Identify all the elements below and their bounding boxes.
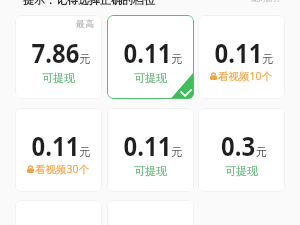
staticText: 0.11 bbox=[124, 35, 171, 70]
staticText: 规则说明 bbox=[251, 0, 279, 3]
staticText: 可提现 bbox=[134, 71, 167, 85]
staticText: 提示：记得选择正确的档位 bbox=[23, 0, 155, 7]
staticText: 0.11 bbox=[124, 128, 171, 163]
button[interactable]: 0.3 bbox=[198, 108, 285, 192]
button[interactable]: 最高 bbox=[15, 15, 102, 99]
staticText: 元 bbox=[262, 51, 273, 66]
staticText: 7.86 bbox=[32, 35, 79, 70]
button[interactable]: 0.11 bbox=[107, 108, 194, 192]
staticText: 元 bbox=[79, 51, 90, 66]
staticText: 可提现 bbox=[134, 164, 167, 178]
button[interactable]: 0.11 bbox=[15, 108, 102, 192]
staticText: 元 bbox=[171, 144, 182, 159]
staticText: 最高 bbox=[76, 18, 94, 29]
button[interactable]: 0.11 bbox=[107, 200, 194, 225]
button[interactable]: 0.11 bbox=[198, 15, 285, 99]
staticText: 看视频10个 bbox=[218, 69, 273, 83]
staticText: 元 bbox=[79, 144, 90, 159]
staticText: 0.11 bbox=[215, 35, 262, 70]
staticText: 可提现 bbox=[225, 164, 258, 178]
staticText: 可提现 bbox=[42, 71, 75, 85]
staticText: 0.3 bbox=[221, 128, 256, 163]
staticText: 0.11 bbox=[32, 128, 79, 163]
button[interactable]: Rules bbox=[246, 0, 286, 7]
button[interactable]: 0.11 bbox=[15, 200, 102, 225]
button[interactable]: Selected bbox=[107, 15, 194, 99]
staticText: 看视频30个 bbox=[35, 162, 90, 176]
staticText: 元 bbox=[171, 51, 182, 66]
other: Selected bbox=[107, 15, 194, 99]
staticText: 元 bbox=[256, 144, 267, 159]
